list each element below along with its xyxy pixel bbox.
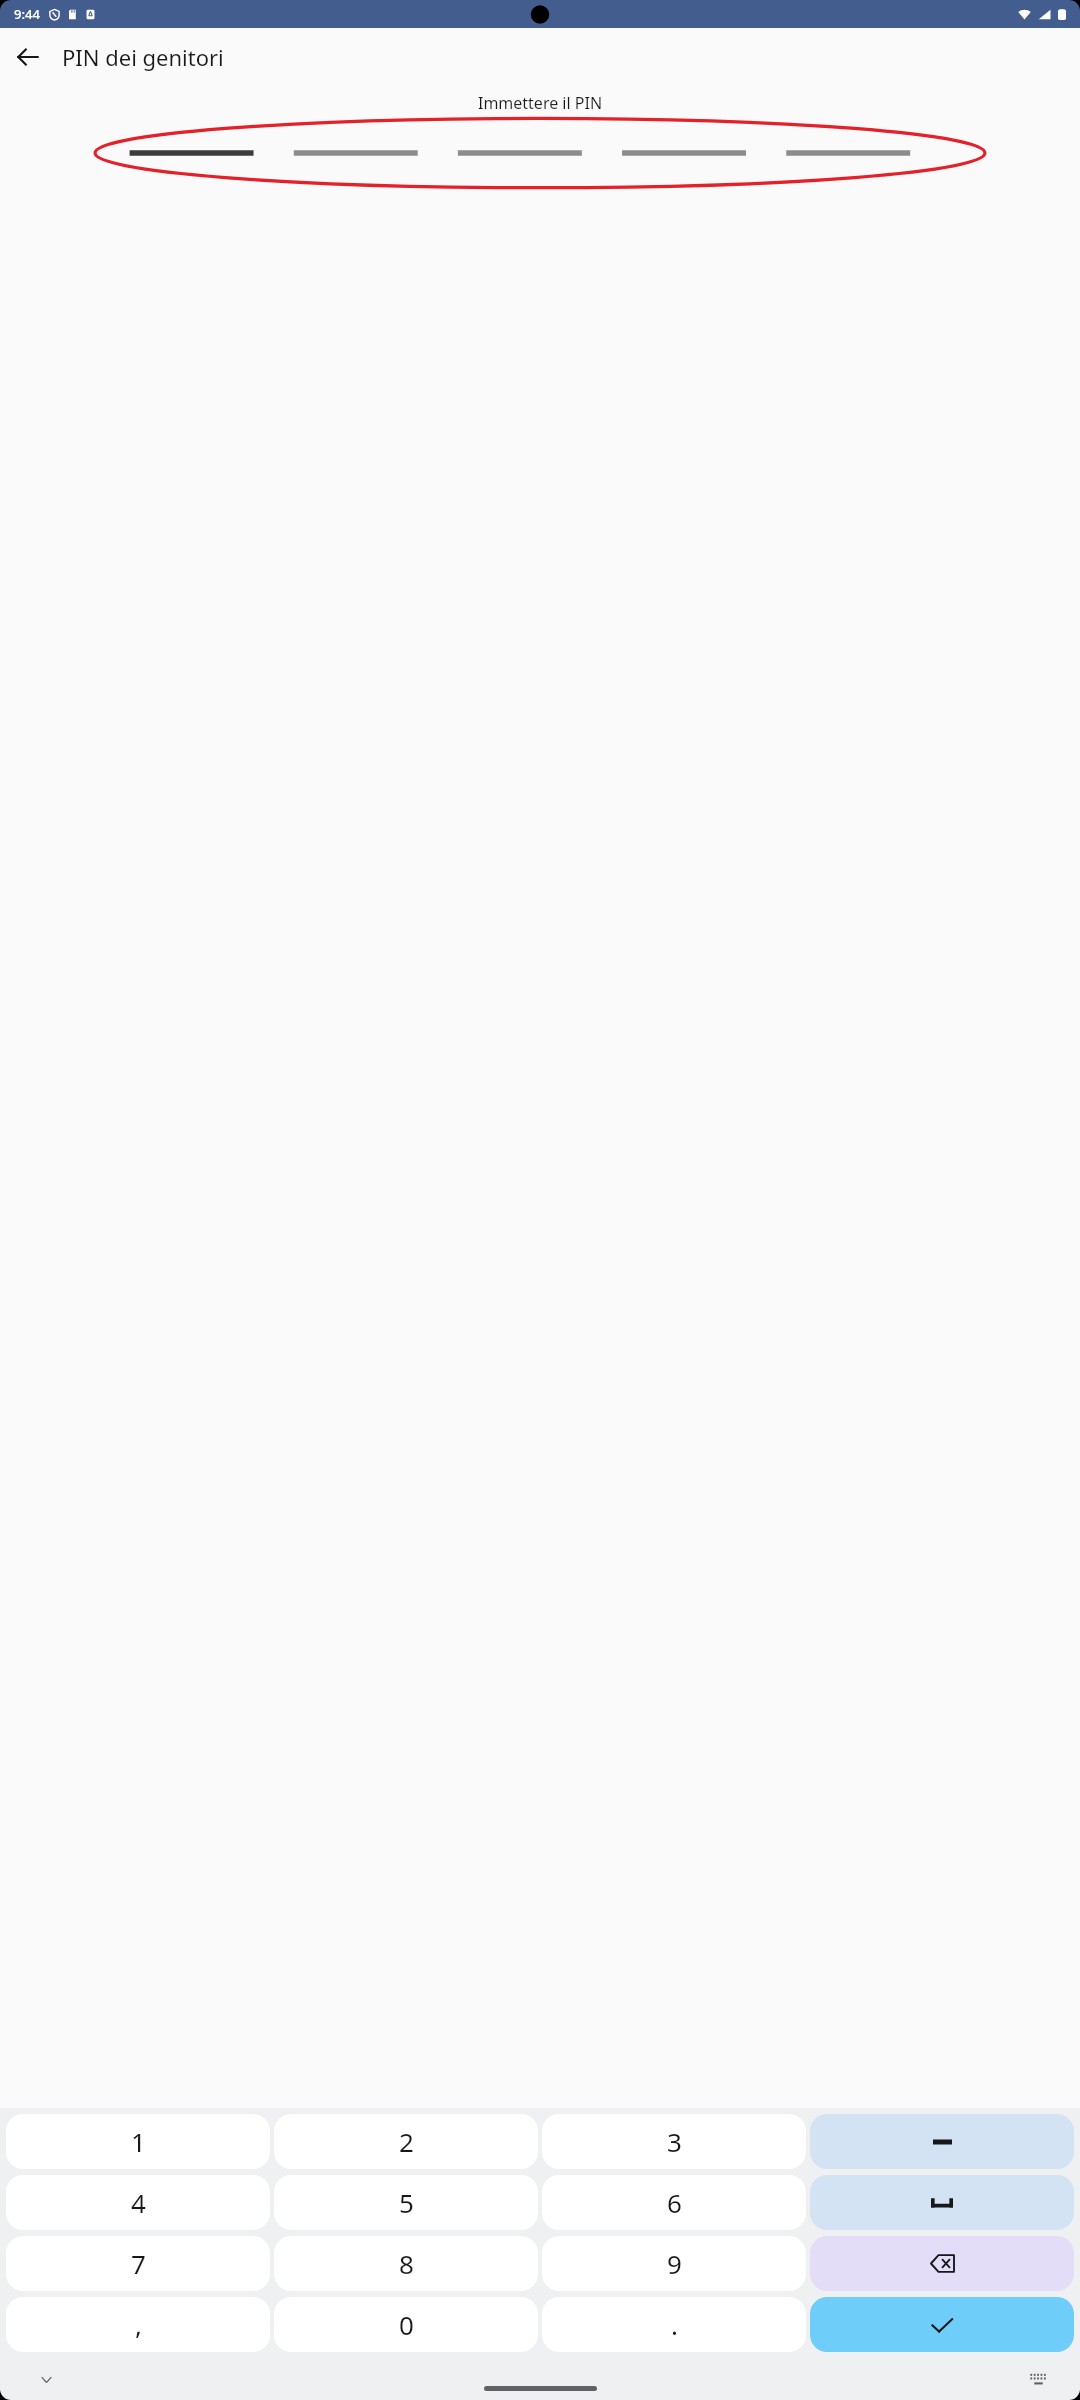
button[interactable]: backspace [810, 2236, 1074, 2291]
button[interactable]: 2 [274, 2114, 538, 2169]
staticText: 9:44 [14, 5, 40, 23]
button[interactable]: . [542, 2297, 806, 2352]
button[interactable]: space [810, 2175, 1074, 2230]
button[interactable]: Hide keyboard [26, 2359, 66, 2399]
staticText: 1 [131, 2124, 146, 2159]
button[interactable]: 5 [274, 2175, 538, 2230]
button[interactable]: 6 [542, 2175, 806, 2230]
staticText: Immettere il PIN [0, 92, 1080, 114]
staticText: , [135, 2307, 142, 2342]
button[interactable]: Back [4, 33, 52, 81]
staticText: 3 [667, 2124, 682, 2159]
button[interactable]: Switch keyboard [1018, 2359, 1058, 2399]
button[interactable]: 1 [6, 2114, 270, 2169]
button[interactable]: , [6, 2297, 270, 2352]
staticText: 4 [131, 2185, 146, 2220]
staticText: 6 [667, 2185, 682, 2220]
staticText: 0 [399, 2307, 414, 2342]
button[interactable]: enter [810, 2297, 1074, 2352]
button[interactable]: 9 [542, 2236, 806, 2291]
staticText: PIN dei genitori [62, 42, 224, 72]
staticText: 2 [399, 2124, 414, 2159]
staticText: . [671, 2307, 678, 2342]
staticText: 8 [399, 2246, 414, 2281]
button[interactable]: 4 [6, 2175, 270, 2230]
button[interactable]: dash [810, 2114, 1074, 2169]
staticText: 9 [667, 2246, 682, 2281]
button[interactable]: 0 [274, 2297, 538, 2352]
staticText: 7 [131, 2246, 146, 2281]
button[interactable]: 7 [6, 2236, 270, 2291]
button[interactable]: 3 [542, 2114, 806, 2169]
button[interactable]: 8 [274, 2236, 538, 2291]
staticText: 5 [399, 2185, 414, 2220]
